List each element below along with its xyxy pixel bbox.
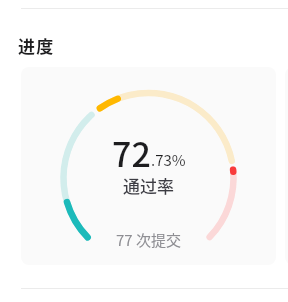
staticText: .73% bbox=[151, 149, 186, 171]
staticText: 72 bbox=[112, 128, 151, 177]
staticText: 通过率 bbox=[123, 173, 174, 198]
staticText: 77 次提交 bbox=[116, 229, 182, 251]
staticText: 进度 bbox=[18, 33, 55, 58]
button[interactable]: 72 bbox=[21, 67, 276, 265]
